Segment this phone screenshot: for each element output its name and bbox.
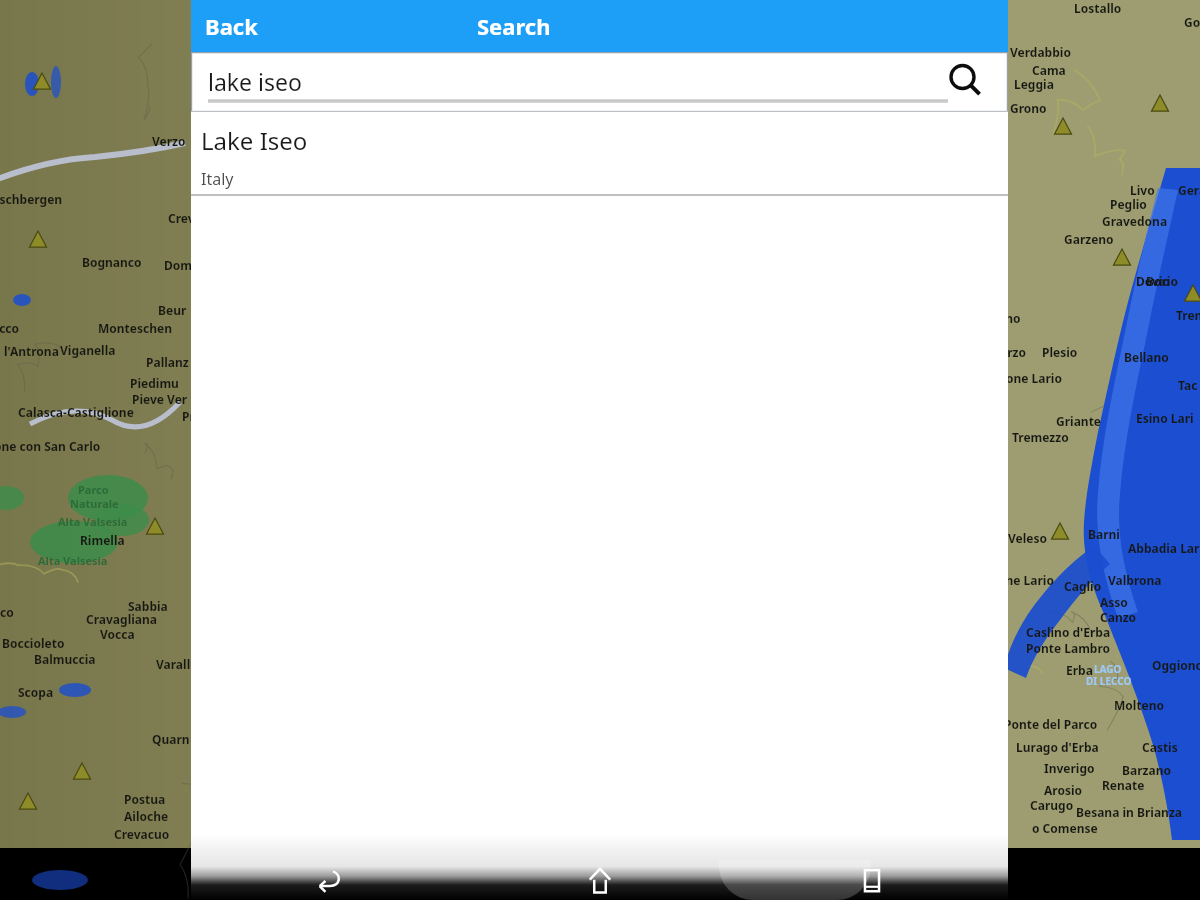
staticText: Erba	[1066, 662, 1093, 678]
staticText: Bellano	[1124, 349, 1169, 365]
staticText: Boccioleto	[2, 635, 65, 651]
staticText: one con San Carlo	[0, 438, 101, 454]
staticText: Barzano	[1122, 762, 1171, 778]
staticText: Viganella	[60, 342, 116, 358]
staticText: Pallanz	[146, 354, 189, 370]
staticText: Oggiono	[1152, 657, 1200, 673]
staticText: sco	[0, 604, 14, 620]
staticText: Crevacuo	[114, 826, 170, 842]
staticText: Pieve Ver	[132, 391, 188, 407]
staticText: Renate	[1102, 777, 1145, 793]
staticText: Sabbia	[128, 598, 168, 614]
button[interactable]: Search	[469, 4, 559, 48]
staticText: Verzo	[152, 133, 186, 149]
staticText: Inverigo	[1044, 760, 1095, 776]
staticText: Naturale	[70, 496, 119, 511]
staticText: Alta Valsesia	[58, 514, 128, 529]
staticText: Ailoche	[124, 808, 169, 824]
staticText: Barni	[1088, 526, 1120, 542]
button[interactable]: Lake Iseo	[191, 112, 1008, 196]
staticText: Balmuccia	[34, 651, 96, 667]
staticText: Molteno	[1114, 697, 1165, 713]
staticText: arzo	[1000, 344, 1026, 360]
staticText: Vocca	[100, 626, 135, 642]
button[interactable]: lake iseo	[191, 52, 1008, 112]
staticText: Carugo	[1030, 797, 1074, 813]
staticText: Peglio	[1110, 196, 1147, 212]
button[interactable]: Back	[191, 846, 464, 900]
staticText: o Comense	[1032, 820, 1098, 836]
staticText: Postua	[124, 791, 166, 807]
staticText: Alta Valsesia	[38, 553, 108, 568]
staticText: Valbrona	[1108, 572, 1162, 588]
staticText: one Lario	[998, 572, 1054, 588]
staticText: Monteschen	[98, 320, 172, 336]
staticText: Lake Iseo	[201, 124, 308, 157]
staticText: l'Antrona	[4, 343, 59, 359]
button[interactable]: Back	[197, 4, 266, 48]
staticText: Prè	[182, 408, 202, 424]
staticText: Dovio	[1136, 273, 1170, 289]
staticText: Lostallo	[1074, 0, 1122, 16]
staticText: lake iseo	[208, 66, 302, 97]
staticText: Tremezzo	[1012, 429, 1069, 445]
staticText: Varall	[156, 656, 191, 672]
staticText: ischbergen	[0, 191, 63, 207]
staticText: Asso	[1100, 594, 1128, 610]
staticText: Dom	[164, 257, 192, 273]
staticText: Leggia	[1014, 76, 1054, 92]
staticText: Rimella	[80, 532, 125, 548]
staticText: Caslino d'Erba	[1026, 624, 1111, 640]
staticText: ano	[998, 310, 1021, 326]
staticText: Arosio	[1044, 782, 1083, 798]
staticText: Garzeno	[1064, 231, 1114, 247]
staticText: Lurago d'Erba	[1016, 739, 1099, 755]
staticText: Gera	[1178, 182, 1200, 198]
staticText: Esino Lari	[1136, 410, 1194, 426]
staticText: Caglio	[1064, 578, 1102, 594]
staticText: Grono	[1010, 100, 1047, 116]
staticText: Abbadia Lari	[1128, 540, 1200, 556]
staticText: Plesio	[1042, 344, 1078, 360]
button[interactable]: Recent apps	[736, 846, 1008, 900]
button[interactable]: Search	[940, 57, 990, 107]
staticText: ecco	[0, 320, 20, 336]
staticText: Borio	[1146, 273, 1178, 289]
staticText: Back	[205, 11, 258, 41]
staticText: Ponte Lambro	[1026, 640, 1111, 656]
staticText: Verdabbio	[1010, 44, 1071, 60]
staticText: Bognanco	[82, 254, 142, 270]
staticText: Tac	[1178, 377, 1198, 393]
staticText: Gravedona	[1102, 213, 1168, 229]
staticText: Cama	[1032, 62, 1066, 78]
staticText: Crev	[168, 210, 195, 226]
staticText: Ponte del Parco	[1004, 716, 1098, 732]
staticText: Gor	[1184, 14, 1200, 30]
staticText: one Lario	[1006, 370, 1062, 386]
staticText: Scopa	[18, 684, 54, 700]
button[interactable]: Home	[464, 846, 736, 900]
staticText: Beur	[158, 302, 187, 318]
staticText: Calasca-Castiglione	[18, 404, 134, 420]
staticText: Veleso	[1008, 530, 1047, 546]
staticText: Canzo	[1100, 609, 1137, 625]
staticText: Search	[477, 11, 551, 41]
staticText: DI LECCO	[1086, 674, 1132, 688]
staticText: Italy	[201, 168, 234, 190]
staticText: Quarn	[152, 731, 190, 747]
staticText: LAGO	[1094, 662, 1122, 676]
staticText: Piedimu	[130, 375, 179, 391]
staticText: Livo	[1130, 182, 1155, 198]
staticText: Trem	[1176, 307, 1200, 323]
staticText: Griante	[1056, 413, 1102, 429]
staticText: Cravagliana	[86, 611, 157, 627]
staticText: Besana in Brianza	[1076, 804, 1182, 820]
staticText: Parco	[78, 482, 109, 497]
staticText: Castis	[1142, 739, 1178, 755]
